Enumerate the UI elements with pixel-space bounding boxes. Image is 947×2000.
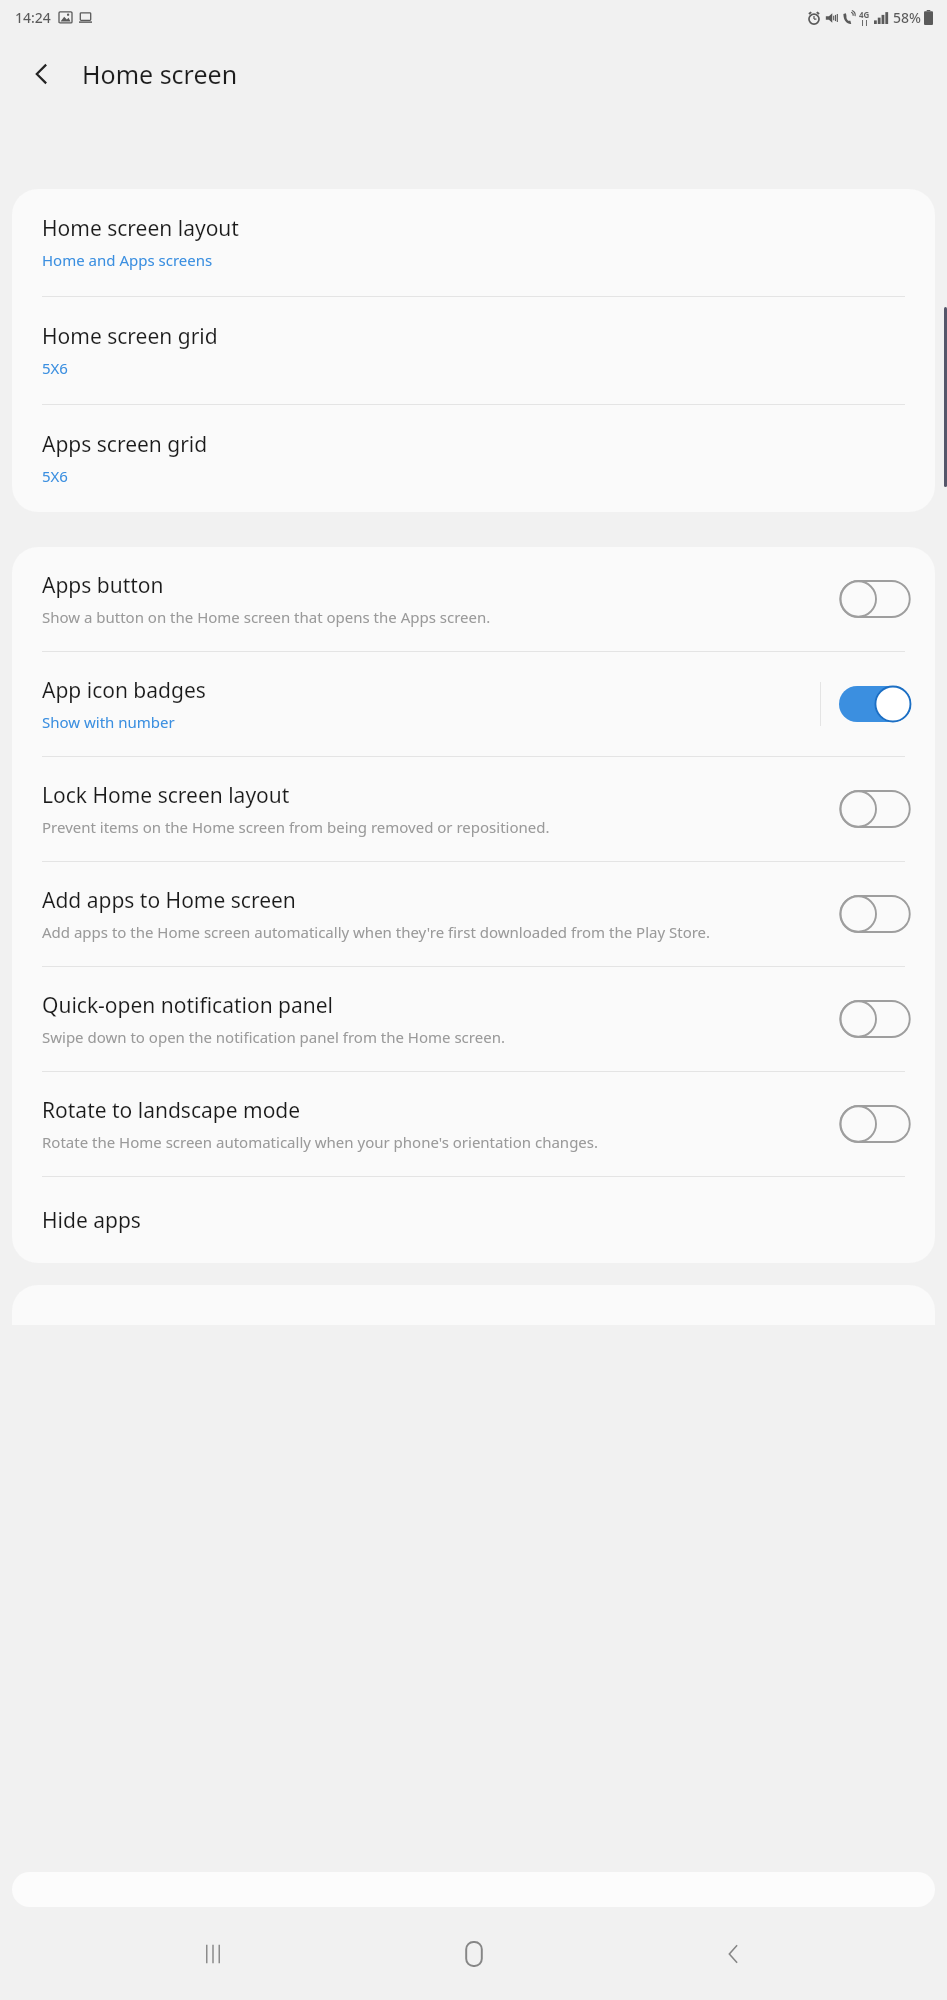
button[interactable]: Quick-open notification panel [12,967,935,1071]
staticText: Home screen grid [42,322,218,351]
staticText: Prevent items on the Home screen from be… [42,817,550,837]
button[interactable]: Home screen layout [12,189,935,296]
staticText: 58% [893,8,921,27]
staticText: Lock Home screen layout [42,781,290,810]
button[interactable]: Apps screen grid [12,405,935,512]
staticText: Rotate to landscape mode [42,1096,301,1125]
button[interactable]: Recents [166,1907,260,2000]
button[interactable]: Rotate to landscape mode [12,1072,935,1176]
button[interactable]: App icon badges [12,652,935,756]
staticText: Home screen layout [42,214,239,243]
button[interactable]: Off [839,788,911,830]
staticText: Show with number [42,712,175,732]
staticText: Swipe down to open the notification pane… [42,1027,505,1047]
staticText: Apps button [42,571,164,600]
staticText: App icon badges [42,676,206,705]
button[interactable]: Back [14,46,70,102]
staticText: Quick-open notification panel [42,991,334,1020]
button[interactable]: Add apps to Home screen [12,862,935,966]
button[interactable]: Apps button [12,547,935,651]
staticText: 14:24 [15,8,51,27]
button[interactable]: On [839,683,911,725]
staticText: 5X6 [42,466,68,486]
button[interactable]: Off [839,893,911,935]
staticText: Home and Apps screens [42,250,213,270]
button[interactable]: Off [839,578,911,620]
staticText: Hide apps [42,1206,141,1235]
button[interactable]: Back [687,1907,781,2000]
staticText: 5X6 [42,358,68,378]
button[interactable]: Hide apps [12,1177,935,1263]
button[interactable]: Lock Home screen layout [12,757,935,861]
button[interactable]: Off [839,998,911,1040]
button[interactable]: Home [427,1907,521,2000]
button[interactable]: Home screen grid [12,297,935,404]
staticText: 4G [859,9,870,20]
staticText: Rotate the Home screen automatically whe… [42,1132,599,1152]
button[interactable]: Off [839,1103,911,1145]
staticText: Show a button on the Home screen that op… [42,607,491,627]
staticText: Apps screen grid [42,430,208,459]
staticText: Add apps to the Home screen automaticall… [42,922,711,942]
staticText: Add apps to Home screen [42,886,296,915]
staticText: Home screen [82,57,238,91]
